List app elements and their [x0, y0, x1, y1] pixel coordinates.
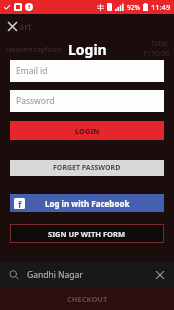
- staticText: Email id: [16, 65, 48, 77]
- staticText: Heavencityfood: [6, 44, 62, 54]
- staticText: ₹170.00: [143, 49, 169, 59]
- staticText: 92%: [127, 3, 140, 12]
- staticText: SIGN UP WITH FORM: [48, 229, 126, 239]
- button[interactable]: Email id: [10, 60, 164, 82]
- staticText: FORGET PASSWORD: [53, 163, 121, 173]
- staticText: CHECKOUT: [67, 294, 108, 304]
- button[interactable]: f: [10, 194, 164, 212]
- button[interactable]: FORGET PASSWORD: [10, 160, 164, 176]
- button[interactable]: Password: [10, 90, 164, 112]
- staticText: 11:49: [151, 2, 171, 12]
- button[interactable]: SIGN UP WITH FORM: [10, 224, 164, 243]
- staticText: f: [28, 3, 31, 11]
- staticText: Password: [16, 95, 55, 107]
- button[interactable]: Gandhi Nagar: [0, 262, 174, 288]
- staticText: Login: [68, 40, 107, 59]
- button[interactable]: CHECKOUT: [0, 288, 174, 310]
- button[interactable]: LOGIN: [10, 121, 164, 140]
- button[interactable]: Clear: [154, 269, 166, 281]
- staticText: LOGIN: [75, 126, 100, 136]
- staticText: f: [18, 198, 22, 209]
- staticText: art: [19, 20, 32, 32]
- staticText: Total:: [151, 39, 169, 49]
- staticText: Gandhi Nagar: [27, 269, 83, 281]
- staticText: Log in with Facebook: [45, 198, 130, 209]
- button[interactable]: Close: [8, 20, 32, 32]
